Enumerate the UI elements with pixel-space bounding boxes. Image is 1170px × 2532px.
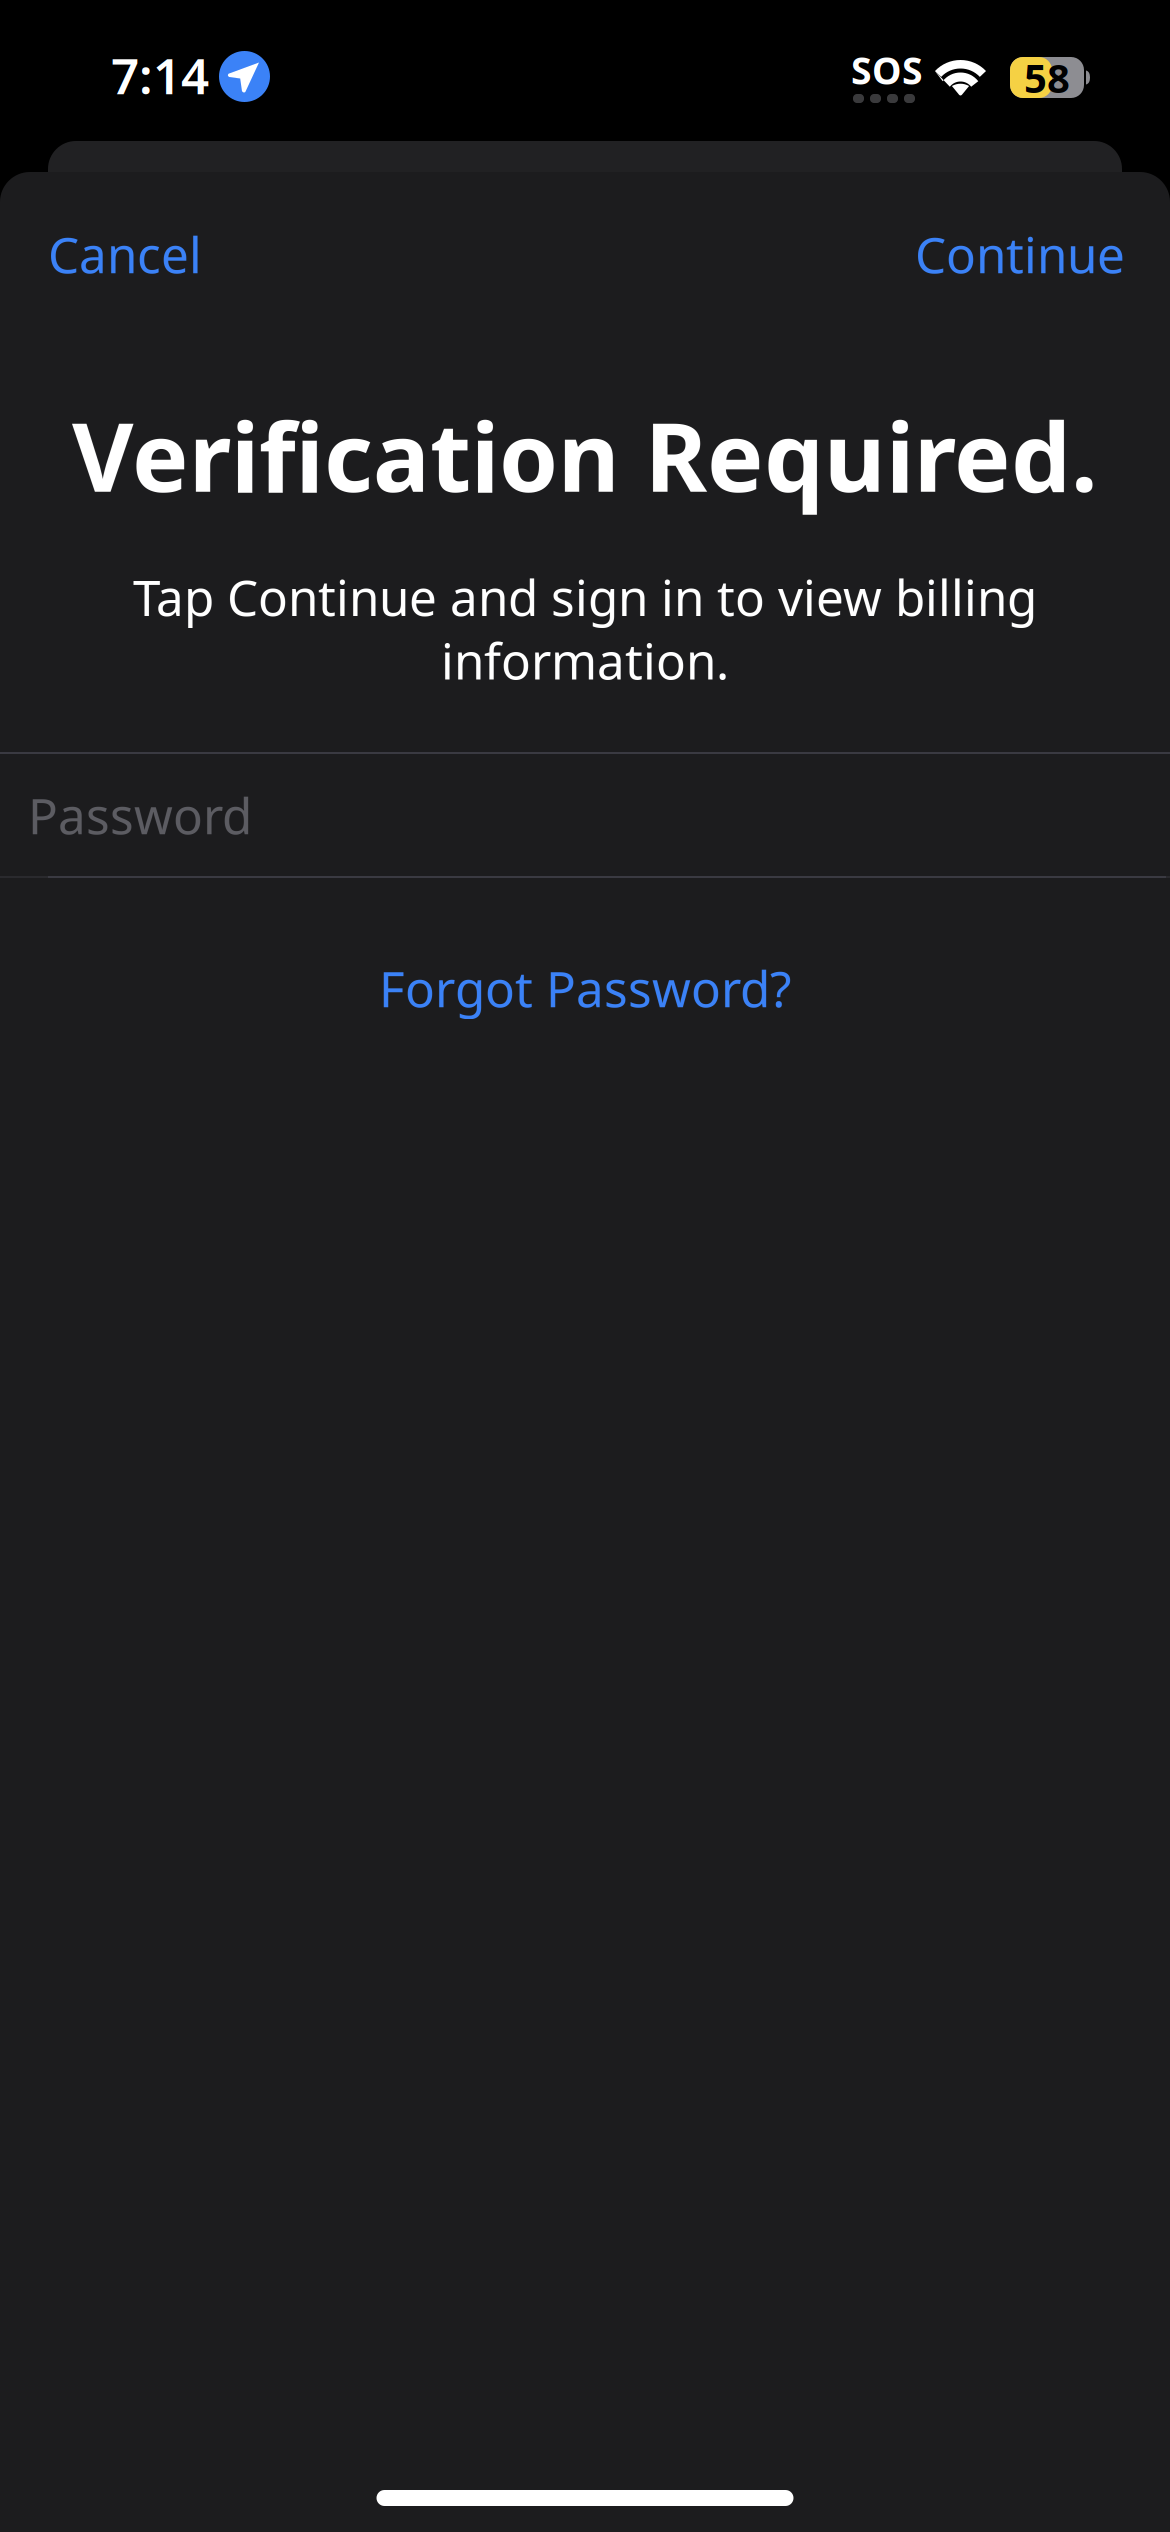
button[interactable]: Continue [885,206,1170,302]
button[interactable]: Forgot Password? [0,940,1170,1036]
button[interactable]: Password [0,754,1170,876]
staticText: 7:14 [111,42,209,108]
staticText: Continue [915,221,1125,287]
staticText: 58 [1024,51,1070,104]
staticText: Password [28,782,252,848]
staticText: SOS [851,45,923,95]
staticText: Verification Required. [72,392,1098,518]
staticText: information. [441,627,729,693]
staticText: Tap Continue and sign in to view billing [133,564,1037,629]
staticText: Forgot Password? [379,955,791,1021]
button[interactable]: Cancel [0,206,248,302]
staticText: Cancel [48,221,202,287]
